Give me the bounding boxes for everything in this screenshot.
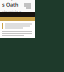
button[interactable]: Menu <box>22 1 33 10</box>
staticText: chronicle.example.com <box>2 9 22 25</box>
staticText: The Keeper's Oath <box>2 0 21 8</box>
